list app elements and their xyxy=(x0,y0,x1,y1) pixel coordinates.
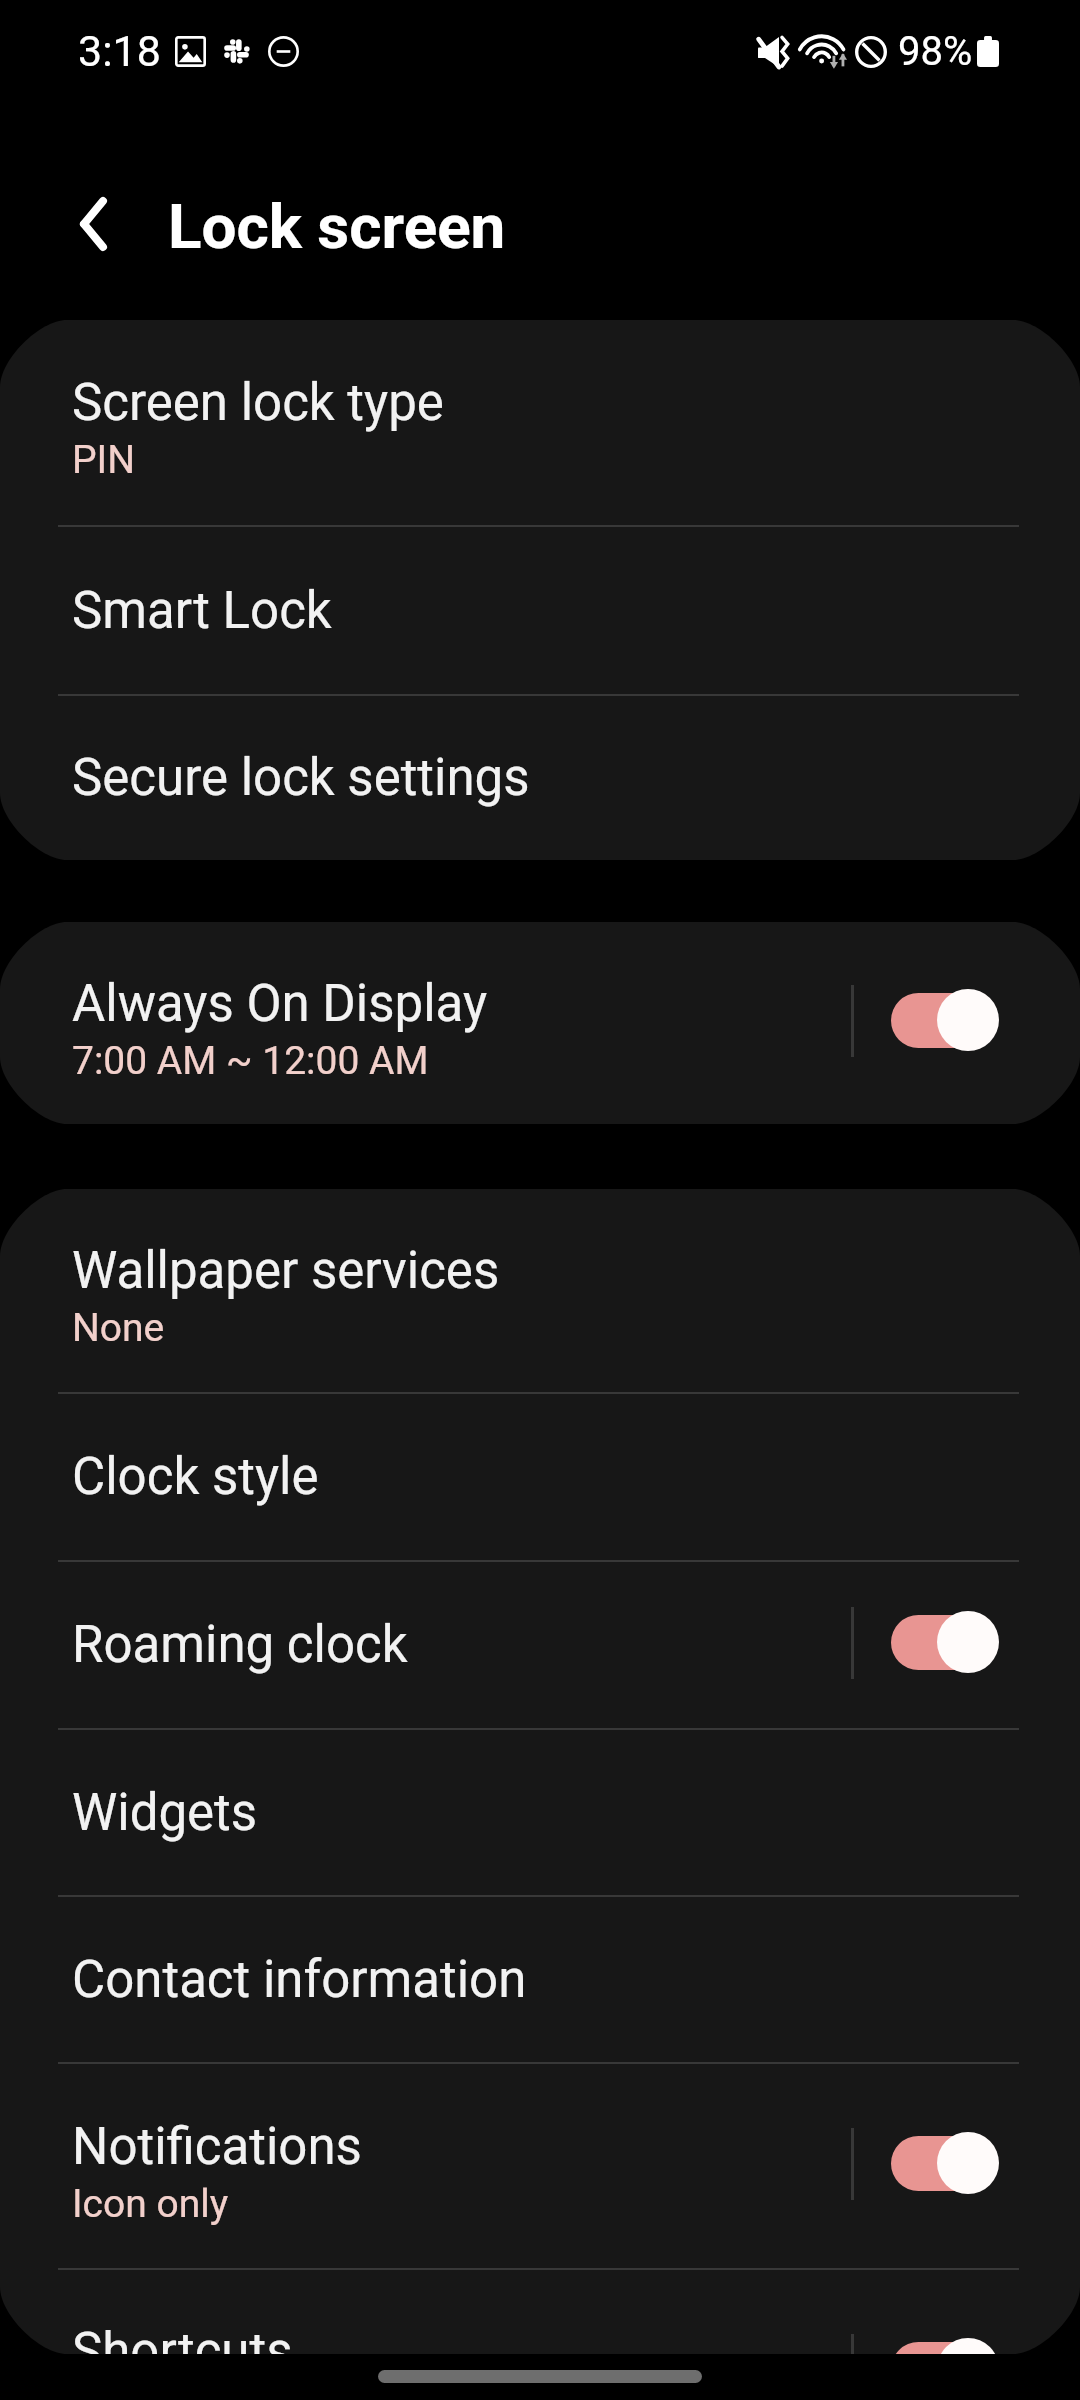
staticText: Clock style xyxy=(72,1447,319,1507)
button[interactable]: Toggle Shortcuts xyxy=(891,2337,999,2354)
button[interactable]: Always On Display xyxy=(0,922,1080,1124)
button[interactable]: Secure lock settings xyxy=(0,696,1080,860)
staticText: 3:18 xyxy=(78,26,161,76)
staticText: Widgets xyxy=(72,1783,258,1843)
button[interactable]: Toggle Always On Display xyxy=(891,988,999,1052)
staticText: Shortcuts xyxy=(72,2322,293,2354)
button[interactable]: Smart Lock xyxy=(0,527,1080,694)
staticText: PIN xyxy=(72,437,136,483)
staticText: Contact information xyxy=(72,1950,527,2010)
button[interactable]: Wallpaper services xyxy=(0,1189,1080,1392)
button[interactable]: Back xyxy=(43,174,143,274)
staticText: Icon only xyxy=(72,2181,229,2227)
button[interactable]: Toggle Roaming clock xyxy=(891,1610,999,1674)
staticText: Wallpaper services xyxy=(72,1241,500,1301)
staticText: Smart Lock xyxy=(72,581,332,641)
staticText: Screen lock type xyxy=(72,373,444,433)
button[interactable]: Notifications xyxy=(0,2064,1080,2268)
staticText: 7:00 AM ~ 12:00 AM xyxy=(72,1038,429,1084)
staticText: Lock screen xyxy=(168,190,506,263)
button[interactable]: Screen lock type xyxy=(0,320,1080,525)
button[interactable]: Widgets xyxy=(0,1730,1080,1895)
staticText: Roaming clock xyxy=(72,1615,408,1675)
button[interactable]: Contact information xyxy=(0,1897,1080,2062)
button[interactable]: Clock style xyxy=(0,1394,1080,1560)
button[interactable]: Shortcuts xyxy=(0,2270,1080,2354)
staticText: Notifications xyxy=(72,2117,362,2177)
button[interactable]: Toggle Notifications xyxy=(891,2131,999,2195)
staticText: Secure lock settings xyxy=(72,748,530,808)
button[interactable]: Roaming clock xyxy=(0,1562,1080,1728)
staticText: Always On Display xyxy=(72,974,488,1034)
staticText: None xyxy=(72,1305,165,1351)
staticText: 98% xyxy=(898,28,973,75)
